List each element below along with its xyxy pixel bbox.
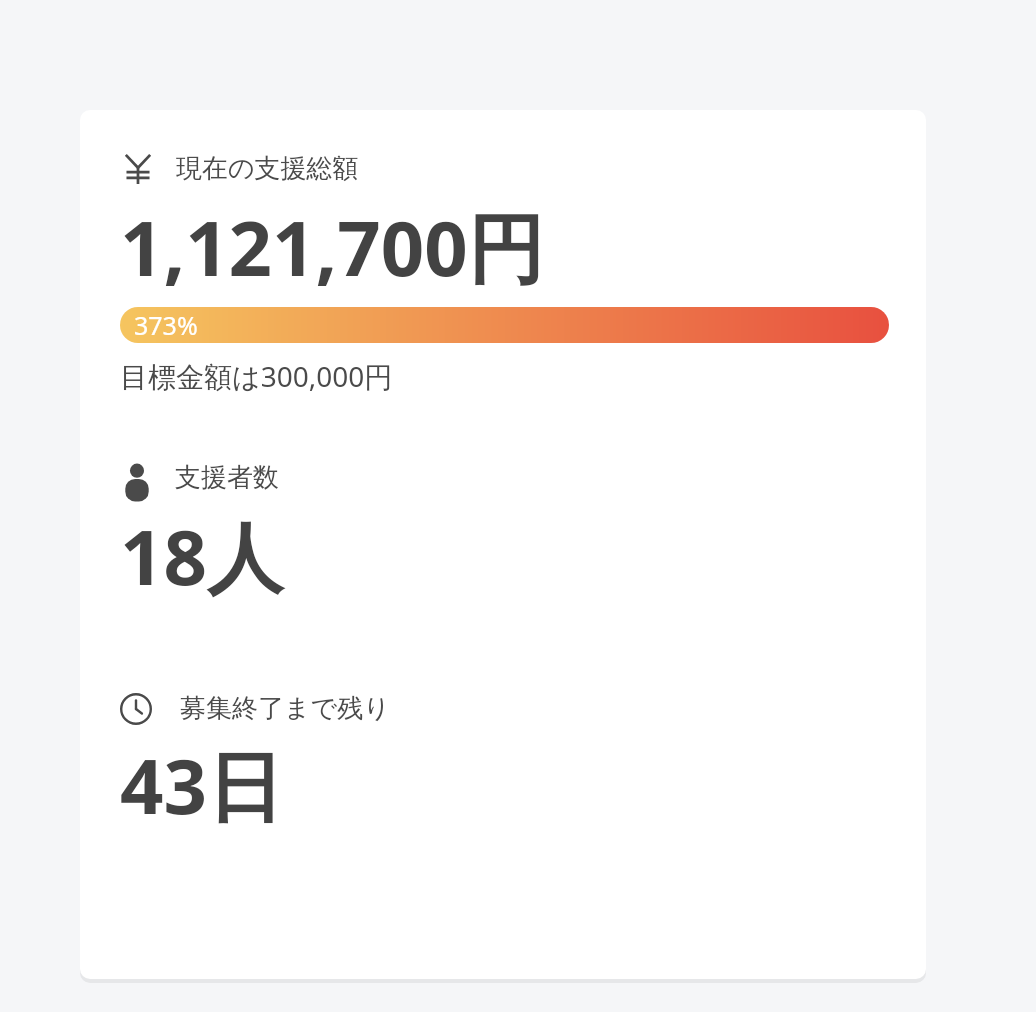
button[interactable]: 現在の支援総額 [80,110,926,979]
button[interactable]: 373% [120,307,889,343]
staticText: 支援者数 [175,461,279,494]
staticText: 募集終了まで残り [180,692,390,725]
staticText: 1,121,700円 [120,195,544,299]
staticText: 18人 [120,504,283,608]
staticText: 現在の支援総額 [176,152,359,185]
staticText: 43日 [120,733,283,837]
staticText: 373% [134,308,198,342]
staticText: 目標金額は300,000円 [120,357,393,395]
